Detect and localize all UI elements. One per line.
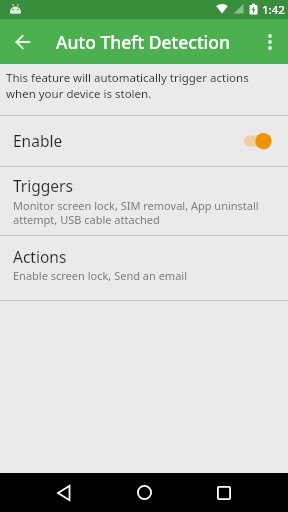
button[interactable] (120, 473, 168, 512)
staticText: This feature will automatically trigger … (6, 70, 249, 102)
staticText: Enable (13, 130, 63, 151)
button[interactable] (252, 19, 288, 64)
button[interactable] (200, 473, 248, 512)
staticText: Triggers (13, 175, 73, 196)
button[interactable]: Enable (0, 116, 288, 166)
staticText: Auto Theft Detection (56, 30, 231, 54)
staticText: Monitor screen lock, SIM removal, App un… (13, 198, 259, 227)
button[interactable] (244, 132, 272, 150)
staticText: 1:42 (262, 2, 285, 18)
button[interactable] (40, 473, 88, 512)
button[interactable]: Triggers (0, 167, 288, 235)
staticText: Enable screen lock, Send an email (13, 268, 187, 283)
button[interactable]: Actions (0, 236, 288, 300)
staticText: Actions (13, 246, 67, 267)
button[interactable] (0, 19, 45, 64)
